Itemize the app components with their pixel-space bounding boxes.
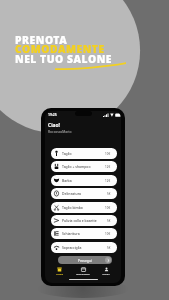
button[interactable]: Schiaritura xyxy=(51,228,117,239)
staticText: 5€ xyxy=(107,246,111,250)
staticText: Schiaritura xyxy=(62,231,80,236)
staticText: RoccoscoMario xyxy=(48,129,72,133)
staticText: 10€ xyxy=(105,206,111,210)
staticText: NEL TUO SALONE xyxy=(15,52,113,66)
staticText: Taglio bimbo xyxy=(62,205,83,210)
staticText: Prenotazioni xyxy=(76,273,90,276)
button[interactable]: Locale xyxy=(54,266,65,277)
button[interactable]: Prosegui xyxy=(58,256,112,264)
staticText: Profilo xyxy=(102,273,110,276)
staticText: Ciao! xyxy=(48,122,61,129)
staticText: 19:25 xyxy=(48,112,57,117)
staticText: Delineatura xyxy=(62,191,81,196)
button[interactable]: Taglio bimbo xyxy=(51,202,117,213)
staticText: Taglio + shampoo xyxy=(62,164,91,169)
button[interactable]: Prenotazioni xyxy=(74,266,92,277)
staticText: Barba xyxy=(62,178,72,183)
staticText: Sopracciglia xyxy=(62,245,82,250)
button[interactable]: Sopracciglia xyxy=(51,242,117,253)
staticText: PRENOTA xyxy=(15,33,68,47)
button[interactable]: Taglio + shampoo xyxy=(51,161,117,172)
staticText: 10€ xyxy=(105,152,111,156)
staticText: 10€ xyxy=(105,232,111,236)
button[interactable]: Barba xyxy=(51,175,117,186)
staticText: Locale xyxy=(56,273,63,276)
button[interactable]: Profilo xyxy=(100,266,112,277)
staticText: Pulizia colla e basette xyxy=(62,218,97,223)
staticText: Prosegui xyxy=(78,258,92,262)
button[interactable]: Delineatura xyxy=(51,188,117,199)
staticText: COMODAMENTE xyxy=(15,42,105,56)
other: Status icons xyxy=(103,113,119,117)
staticText: 12€ xyxy=(105,179,111,183)
staticText: 12€ xyxy=(105,165,111,169)
button[interactable]: Taglio xyxy=(51,148,117,159)
button[interactable]: Pulizia colla e basette xyxy=(51,215,117,226)
staticText: Taglio xyxy=(62,151,72,156)
staticText: 5€ xyxy=(107,219,111,223)
staticText: 5€ xyxy=(107,192,111,196)
